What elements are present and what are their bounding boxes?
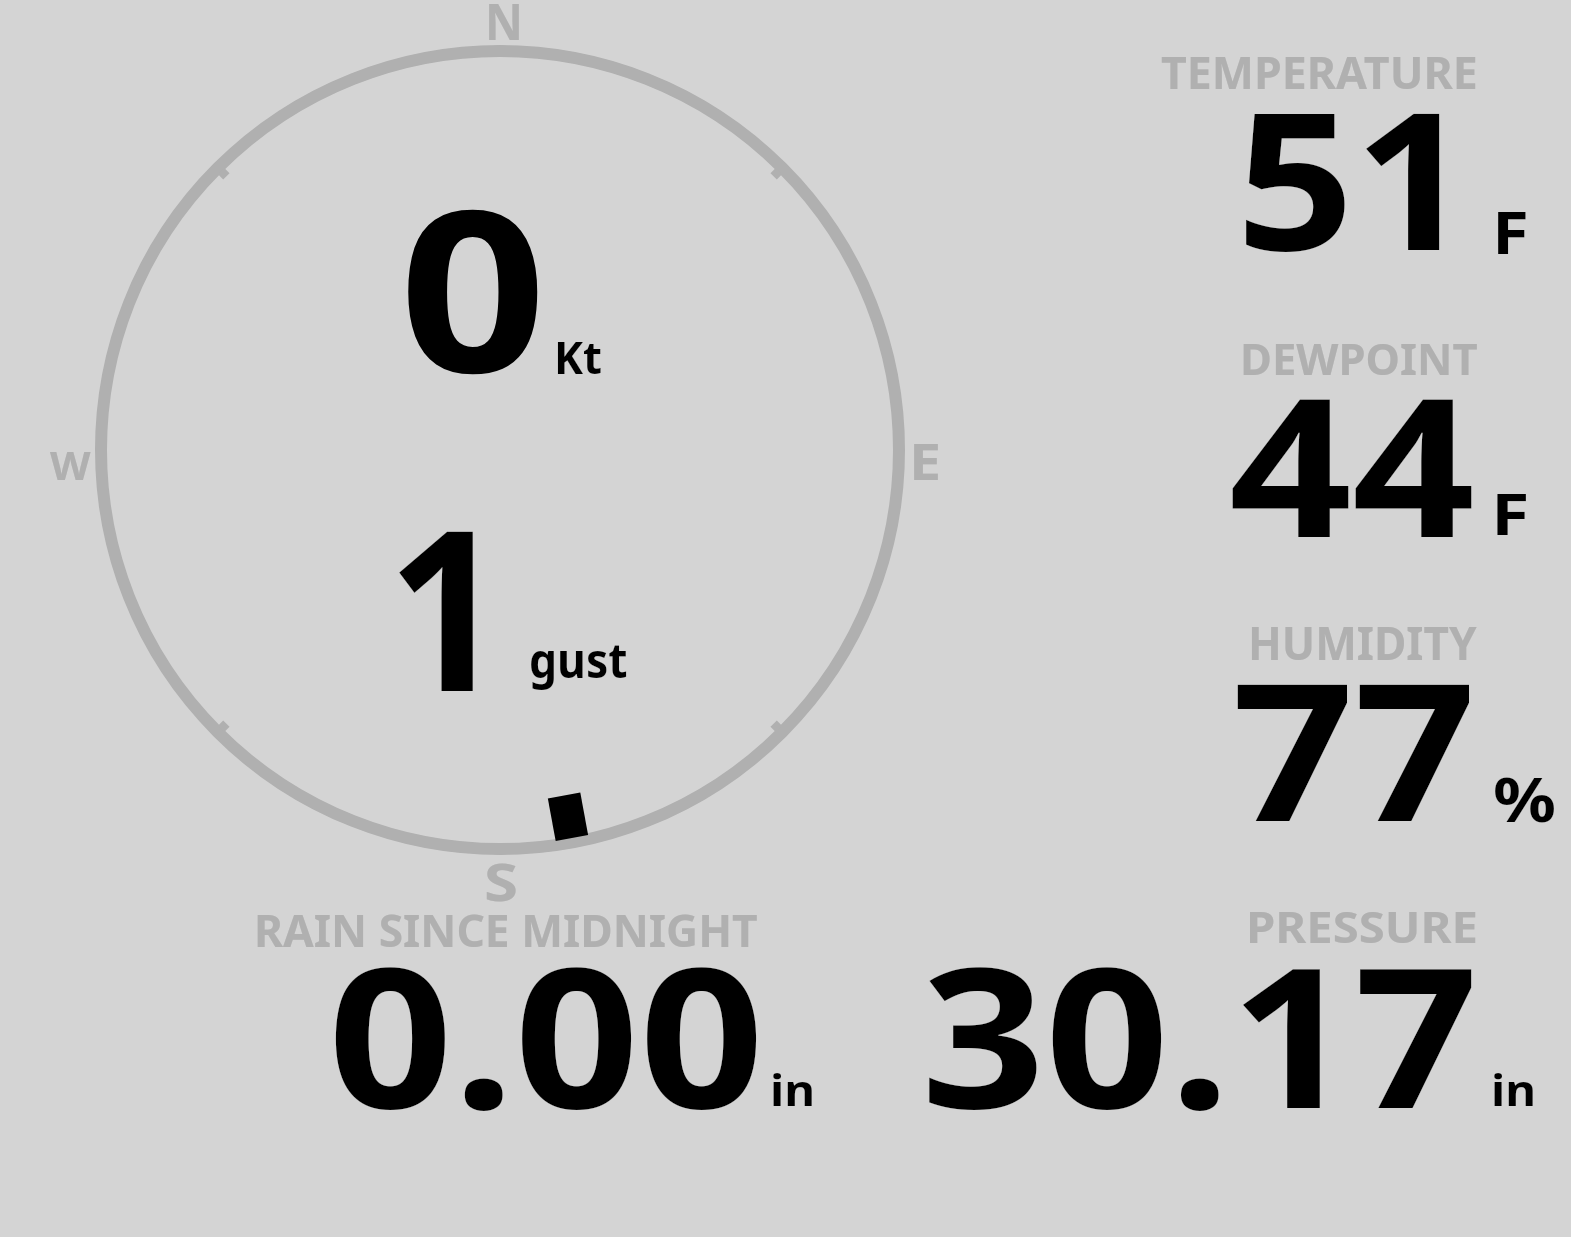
staticText: in bbox=[1491, 1060, 1537, 1119]
staticText: 0.00 bbox=[328, 901, 765, 1164]
button[interactable]: Temperature 51 F bbox=[1150, 40, 1565, 280]
staticText: 0 bbox=[399, 133, 547, 438]
button[interactable]: Wind 0 knots, gust 1 bbox=[90, 0, 910, 900]
staticText: E bbox=[909, 426, 942, 495]
staticText: 1 bbox=[387, 454, 507, 757]
staticText: 30.17 bbox=[921, 901, 1479, 1164]
staticText: in bbox=[770, 1061, 816, 1119]
button[interactable]: Pressure 30.17 in bbox=[900, 890, 1565, 1125]
staticText: N bbox=[485, 0, 524, 55]
staticText: PRESSURE bbox=[1246, 898, 1478, 956]
staticText: DEWPOINT bbox=[1240, 329, 1478, 388]
button[interactable]: Rain since midnight 0.00 in bbox=[240, 895, 840, 1125]
staticText: TEMPERATURE bbox=[1161, 42, 1478, 102]
staticText: 51 bbox=[1236, 47, 1472, 306]
staticText: F bbox=[1491, 473, 1530, 552]
staticText: 77 bbox=[1232, 618, 1476, 877]
staticText: S bbox=[484, 845, 518, 916]
staticText: % bbox=[1493, 757, 1557, 839]
staticText: gust bbox=[529, 627, 628, 692]
staticText: F bbox=[1492, 192, 1530, 271]
staticText: W bbox=[50, 438, 91, 492]
staticText: RAIN SINCE MIDNIGHT bbox=[254, 900, 758, 960]
staticText: HUMIDITY bbox=[1248, 611, 1477, 673]
staticText: 44 bbox=[1229, 332, 1476, 593]
staticText: Kt bbox=[554, 326, 603, 387]
button[interactable]: Dewpoint 44 F bbox=[1150, 325, 1565, 565]
button[interactable]: Humidity 77 percent bbox=[1150, 610, 1565, 850]
